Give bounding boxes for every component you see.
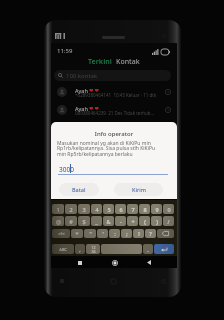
button[interactable]: 12 34	[86, 244, 100, 254]
staticText: 089380464239 21 Des Tidak terhub…	[75, 110, 155, 116]
staticText: 2	[69, 206, 73, 213]
button[interactable]: @	[52, 216, 64, 226]
button[interactable]: 2	[65, 204, 77, 214]
staticText: 11:59	[57, 47, 73, 55]
button[interactable]: ?	[145, 229, 156, 238]
button[interactable]: *	[71, 229, 83, 238]
button[interactable]: Enter	[154, 244, 174, 254]
button[interactable]: 9	[151, 204, 162, 214]
button[interactable]: ,	[75, 244, 85, 254]
staticText: 4	[95, 206, 99, 213]
staticText: 7	[131, 206, 135, 213]
staticText: min Rp5rb/kelipatannya berlaku	[57, 151, 133, 158]
button[interactable]: Kirim	[114, 183, 163, 196]
staticText: $	[82, 218, 86, 225]
button[interactable]: =\<	[52, 229, 70, 238]
staticText: ?	[149, 230, 152, 237]
staticText: _	[95, 218, 98, 225]
staticText: Ayah	[75, 87, 88, 94]
staticText: 6	[119, 206, 123, 213]
button[interactable]: /	[163, 216, 174, 226]
staticText: =\<	[58, 231, 65, 236]
staticText: 8	[143, 206, 147, 213]
staticText: Batal	[72, 186, 86, 193]
staticText: 12 34	[91, 245, 96, 254]
button[interactable]: Recents	[74, 257, 85, 268]
staticText: -	[120, 218, 122, 225]
staticText: Kirim	[132, 186, 146, 193]
staticText: Ayah	[75, 105, 88, 112]
button[interactable]: ;	[121, 229, 132, 238]
staticText: +6289380464141 10:43 Keluar · 11 dtk	[75, 92, 157, 98]
staticText: Info operator	[51, 130, 177, 138]
staticText: 3	[82, 206, 86, 213]
button[interactable]: Backspace	[157, 229, 174, 238]
staticText: Masukan nominal yg akan di KiKiPu min	[57, 140, 151, 147]
staticText: ABC	[59, 247, 67, 252]
button[interactable]: $	[78, 216, 90, 226]
button[interactable]: )	[151, 216, 162, 226]
button[interactable]: Batal	[59, 183, 99, 196]
button[interactable]: 8	[139, 204, 150, 214]
button[interactable]: +	[127, 216, 138, 226]
staticText: Terkini	[88, 57, 112, 67]
button[interactable]: _	[91, 216, 102, 226]
button[interactable]: .	[143, 244, 153, 254]
staticText: .	[147, 246, 149, 253]
button[interactable]: Recents	[57, 276, 67, 286]
button[interactable]: &	[103, 216, 114, 226]
staticText: &	[106, 218, 111, 225]
button[interactable]: -	[115, 216, 126, 226]
button[interactable]: Terkini	[86, 56, 114, 68]
staticText: (	[144, 218, 146, 225]
staticText: ;	[126, 230, 128, 237]
button[interactable]: 6	[115, 204, 126, 214]
staticText: 3000	[59, 165, 74, 174]
button[interactable]: Ayah	[51, 104, 177, 122]
button[interactable]: Back	[143, 257, 154, 268]
button[interactable]: 100 kontak	[54, 70, 171, 81]
button[interactable]: Kontak	[114, 56, 142, 68]
staticText: 0	[167, 206, 171, 213]
button[interactable]: ABC	[52, 244, 74, 254]
button[interactable]: 4	[91, 204, 102, 214]
button[interactable]: "	[84, 229, 96, 238]
button[interactable]: Ayah	[51, 86, 177, 104]
staticText: +	[131, 218, 135, 225]
button[interactable]: #	[65, 216, 77, 226]
staticText: 9	[155, 206, 159, 213]
staticText: 1	[56, 206, 60, 213]
staticText: *	[75, 230, 79, 237]
button[interactable]: 5	[103, 204, 114, 214]
button[interactable]: Home	[109, 257, 120, 268]
staticText: #	[69, 218, 73, 225]
button[interactable]: 0	[163, 204, 174, 214]
staticText: Kontak	[116, 57, 140, 67]
staticText: Rp1rb/kelipatannya. Sisa pulsa stlh KiKi…	[57, 145, 156, 152]
button[interactable]: 3	[78, 204, 90, 214]
staticText: :	[114, 230, 116, 237]
staticText: )	[156, 218, 158, 225]
staticText: 100 kontak	[66, 72, 98, 80]
button[interactable]: Home	[108, 276, 118, 286]
button[interactable]: 7	[127, 204, 138, 214]
staticText: @	[56, 218, 61, 225]
staticText: '	[102, 230, 104, 237]
button[interactable]: 1	[52, 204, 64, 214]
staticText: !	[138, 230, 140, 237]
staticText: "	[89, 230, 92, 237]
staticText: ,	[79, 246, 81, 253]
staticText: 5	[107, 206, 111, 213]
button[interactable]	[101, 244, 142, 254]
button[interactable]: !	[133, 229, 144, 238]
button[interactable]: :	[109, 229, 120, 238]
button[interactable]: (	[139, 216, 150, 226]
staticText: /	[167, 218, 170, 225]
button[interactable]: '	[97, 229, 108, 238]
